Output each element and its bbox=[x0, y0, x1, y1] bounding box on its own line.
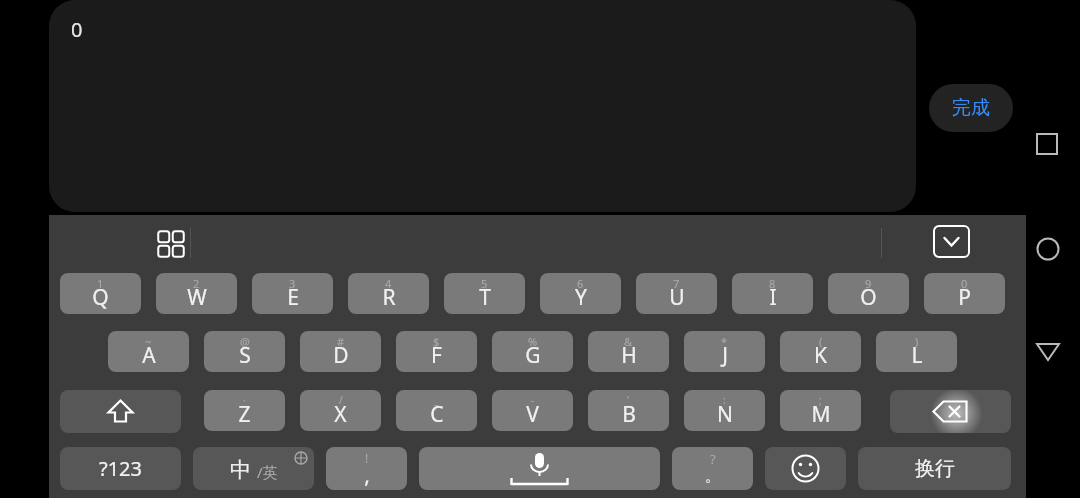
staticText: B bbox=[622, 400, 636, 429]
staticText: & bbox=[624, 334, 633, 349]
staticText: 换行 bbox=[915, 456, 955, 481]
button[interactable]: * bbox=[684, 331, 765, 372]
staticText: ' bbox=[627, 393, 630, 407]
staticText: N bbox=[717, 400, 733, 429]
staticText: G bbox=[525, 341, 541, 370]
button[interactable]: / bbox=[300, 390, 381, 431]
button[interactable]: _ bbox=[396, 390, 477, 431]
staticText: O bbox=[860, 283, 877, 312]
staticText: 完成 bbox=[952, 96, 990, 120]
button[interactable]: 2 bbox=[156, 273, 237, 314]
staticText: ~ bbox=[145, 334, 152, 349]
staticText: 6 bbox=[577, 276, 584, 291]
staticText: 3 bbox=[289, 276, 296, 291]
staticText: H bbox=[621, 341, 637, 370]
staticText: 4 bbox=[385, 276, 392, 291]
staticText: F bbox=[431, 341, 442, 370]
button[interactable]: ( bbox=[780, 331, 861, 372]
button[interactable]: ; bbox=[780, 390, 861, 431]
button[interactable]: 9 bbox=[828, 273, 909, 314]
button[interactable]: Home bbox=[1036, 237, 1060, 261]
button[interactable]: Shift bbox=[60, 390, 181, 433]
button[interactable]: 6 bbox=[540, 273, 621, 314]
staticText: / bbox=[339, 393, 343, 407]
button[interactable]: 3 bbox=[252, 273, 333, 314]
button[interactable]: 4 bbox=[348, 273, 429, 314]
staticText: 1 bbox=[97, 276, 104, 291]
button[interactable]: 0 bbox=[49, 0, 916, 212]
staticText: Z bbox=[238, 400, 251, 429]
button[interactable]: ?123 bbox=[60, 447, 181, 490]
staticText: X bbox=[334, 400, 347, 429]
staticText: 2 bbox=[193, 276, 200, 291]
button[interactable]: @ bbox=[204, 331, 285, 372]
staticText: ! bbox=[365, 450, 369, 466]
button[interactable]: ~ bbox=[108, 331, 189, 372]
staticText: V bbox=[526, 400, 539, 429]
button[interactable]: ! bbox=[326, 447, 407, 490]
button[interactable]: 1 bbox=[60, 273, 141, 314]
staticText: I bbox=[769, 283, 777, 312]
staticText: ( bbox=[819, 334, 823, 349]
staticText: S bbox=[239, 341, 251, 370]
staticText: J bbox=[722, 341, 728, 370]
staticText: % bbox=[528, 334, 538, 349]
staticText: U bbox=[669, 283, 685, 312]
staticText: M bbox=[811, 400, 831, 429]
button[interactable]: 7 bbox=[636, 273, 717, 314]
staticText: 8 bbox=[769, 276, 776, 291]
staticText: 7 bbox=[673, 276, 680, 291]
button[interactable]: Back bbox=[1036, 342, 1060, 362]
staticText: - bbox=[531, 393, 535, 407]
button[interactable]: : bbox=[684, 390, 765, 431]
staticText: ? bbox=[710, 450, 716, 468]
button[interactable]: Space bbox=[419, 447, 660, 490]
staticText: ; bbox=[819, 393, 822, 407]
button[interactable]: ' bbox=[588, 390, 669, 431]
button[interactable]: - bbox=[492, 390, 573, 431]
staticText: A bbox=[142, 341, 156, 370]
staticText: 中 bbox=[230, 457, 251, 483]
button[interactable]: ? bbox=[672, 447, 753, 490]
button[interactable]: Recents bbox=[1036, 133, 1058, 155]
button[interactable]: Hide keyboard bbox=[933, 225, 970, 258]
staticText: T bbox=[479, 283, 491, 312]
button[interactable]: # bbox=[300, 331, 381, 372]
button[interactable]: 0 bbox=[924, 273, 1005, 314]
staticText: E bbox=[287, 283, 299, 312]
button[interactable]: Language bbox=[193, 447, 314, 490]
staticText: $ bbox=[433, 334, 440, 349]
staticText: · bbox=[243, 393, 246, 407]
button[interactable]: · bbox=[204, 390, 285, 431]
staticText: C bbox=[430, 400, 444, 429]
button[interactable]: % bbox=[492, 331, 573, 372]
staticText: : bbox=[723, 393, 726, 407]
staticText: W bbox=[187, 283, 207, 312]
staticText: , bbox=[364, 461, 370, 490]
staticText: /英 bbox=[257, 462, 278, 482]
staticText: 5 bbox=[481, 276, 488, 291]
staticText: D bbox=[333, 341, 349, 370]
staticText: ) bbox=[915, 334, 919, 349]
staticText: K bbox=[814, 341, 827, 370]
staticText: L bbox=[911, 341, 923, 370]
button[interactable]: ) bbox=[876, 331, 957, 372]
button[interactable]: 5 bbox=[444, 273, 525, 314]
button[interactable]: Backspace bbox=[890, 390, 1011, 433]
staticText: 9 bbox=[865, 276, 872, 291]
staticText: R bbox=[382, 283, 396, 312]
staticText: @ bbox=[240, 334, 250, 349]
button[interactable]: 换行 bbox=[858, 447, 1011, 490]
staticText: Q bbox=[92, 283, 109, 312]
button[interactable]: Keyboard menu bbox=[155, 228, 187, 260]
button[interactable]: $ bbox=[396, 331, 477, 372]
staticText: 0 bbox=[71, 16, 83, 43]
staticText: _ bbox=[434, 393, 439, 407]
button[interactable]: Emoji bbox=[765, 447, 846, 490]
button[interactable]: & bbox=[588, 331, 669, 372]
staticText: * bbox=[721, 334, 728, 349]
staticText: ?123 bbox=[99, 455, 142, 482]
button[interactable]: 8 bbox=[732, 273, 813, 314]
button[interactable]: 完成 bbox=[929, 84, 1013, 132]
staticText: 0 bbox=[961, 276, 968, 291]
